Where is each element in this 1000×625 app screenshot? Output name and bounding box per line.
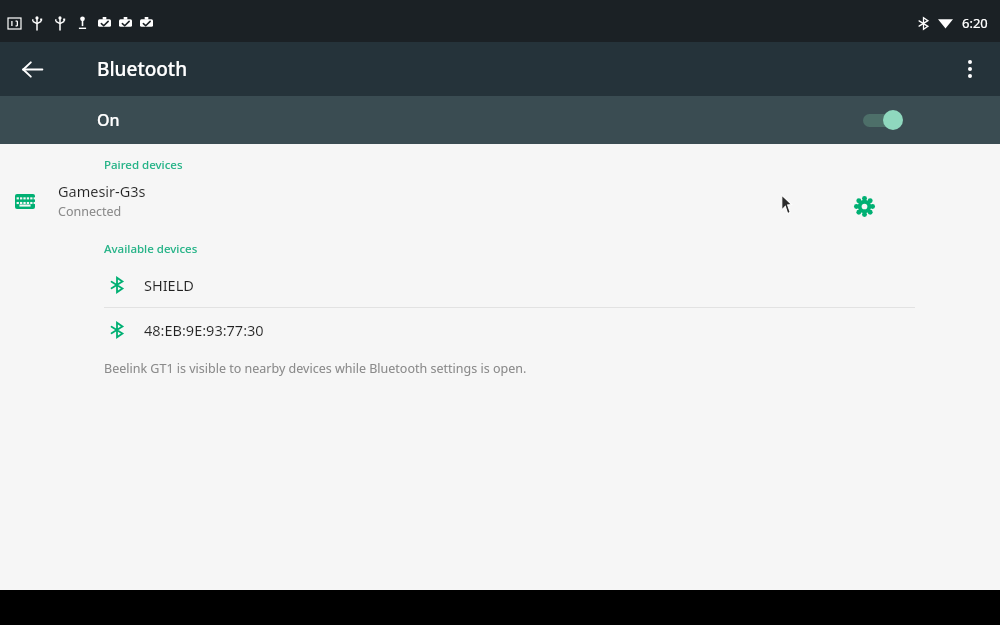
staticText: 48:EB:9E:93:77:30 xyxy=(144,320,264,340)
button[interactable]: More options xyxy=(948,47,992,91)
staticText: Bluetooth xyxy=(97,56,188,82)
button[interactable]: On xyxy=(0,96,1000,144)
staticText: On xyxy=(97,109,120,131)
button[interactable]: Bluetooth on/off xyxy=(858,105,908,135)
button[interactable]: SHIELD xyxy=(0,263,1000,307)
staticText: Gamesir-G3s xyxy=(58,181,146,201)
button[interactable]: Gamesir-G3s xyxy=(0,181,1000,231)
button[interactable]: Device settings xyxy=(842,184,886,228)
staticText: Connected xyxy=(58,203,122,220)
staticText: SHIELD xyxy=(144,275,194,295)
staticText: Available devices xyxy=(104,241,198,257)
staticText: Paired devices xyxy=(104,157,183,173)
button[interactable]: 48:EB:9E:93:77:30 xyxy=(0,308,1000,352)
staticText: 6:20 xyxy=(962,14,988,32)
button[interactable]: Back xyxy=(10,47,54,91)
staticText: Beelink GT1 is visible to nearby devices… xyxy=(104,360,527,377)
